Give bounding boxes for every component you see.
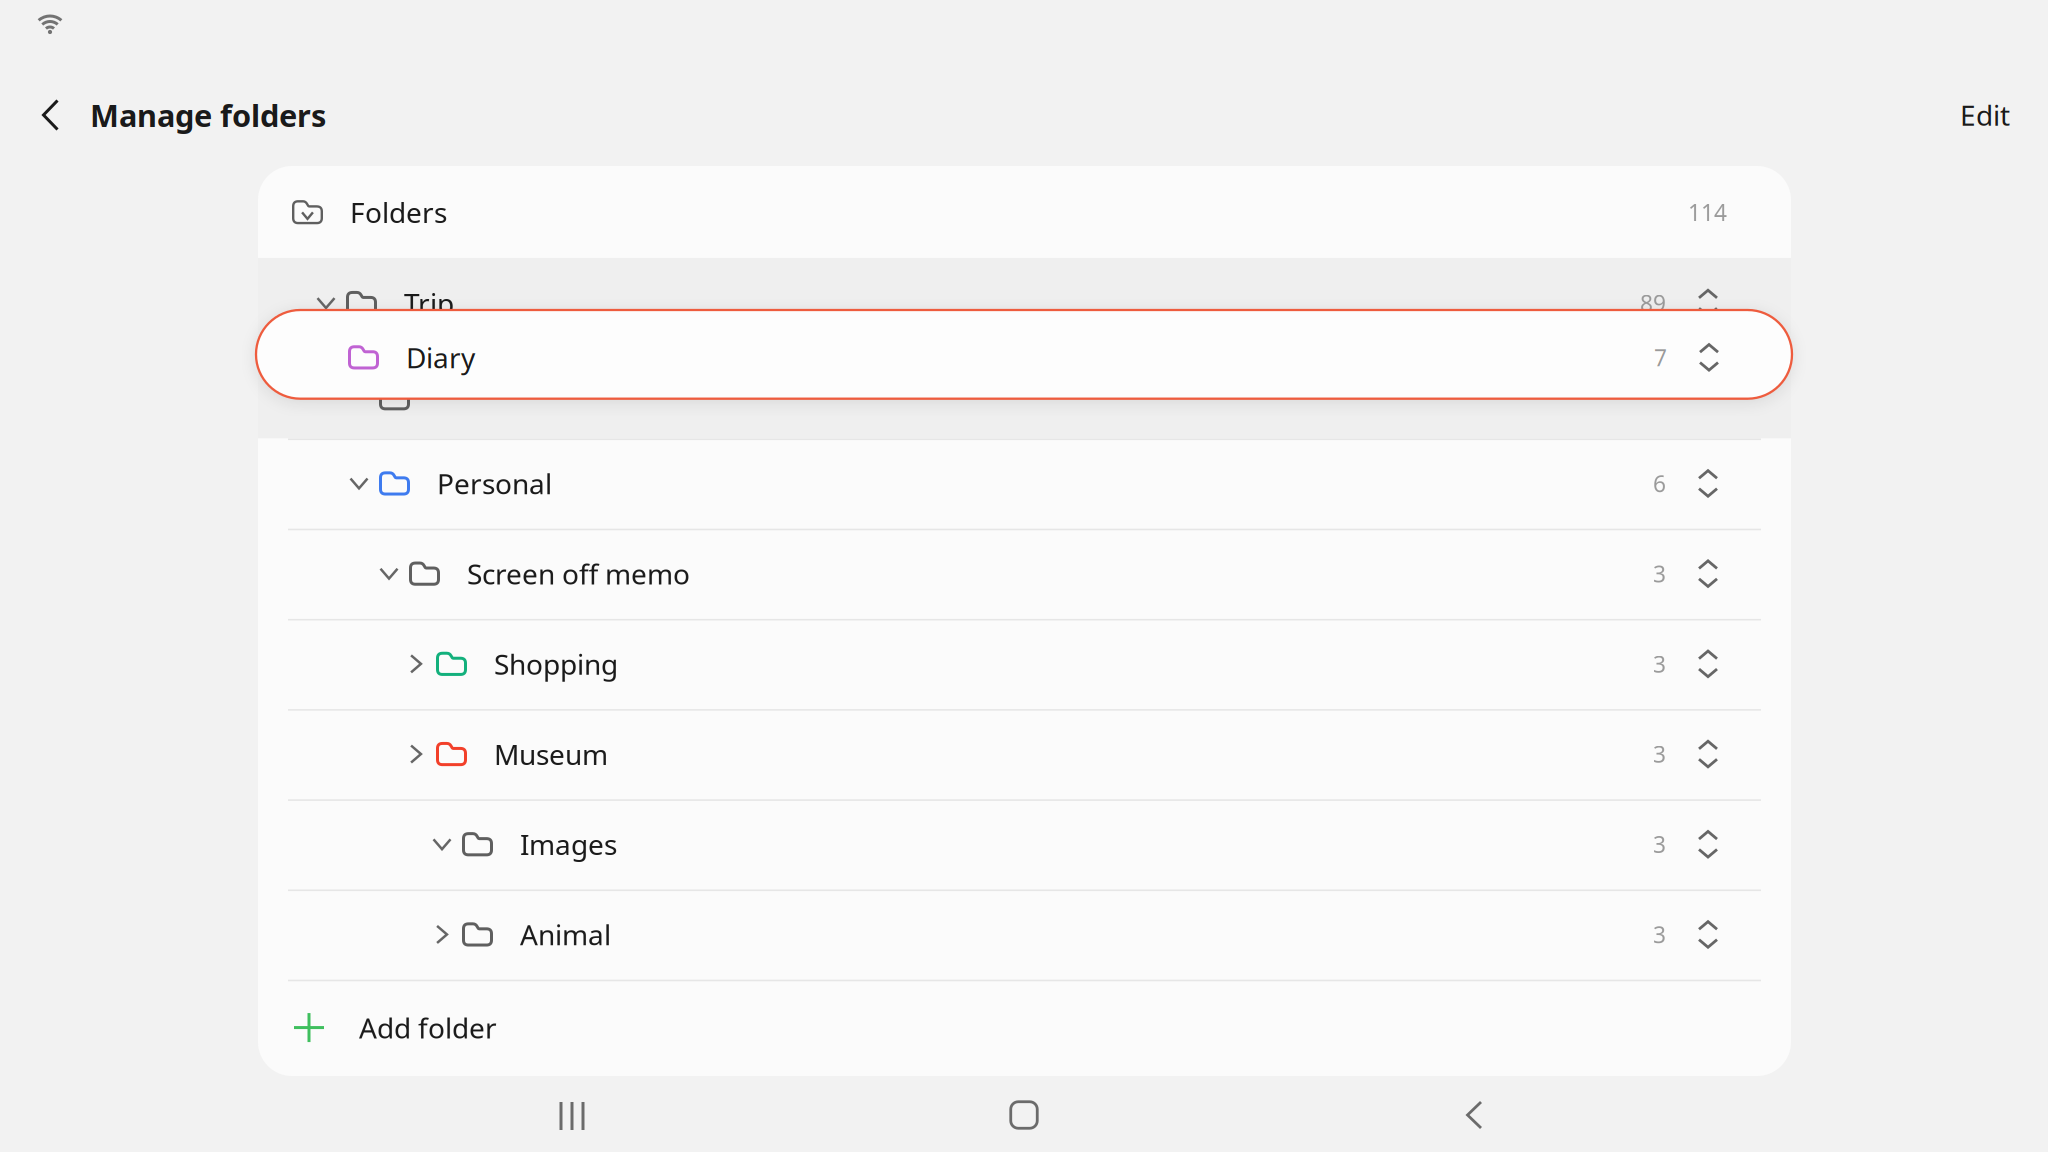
staticText: Screen off memo [467, 555, 690, 592]
staticText: Manage folders [90, 95, 326, 135]
staticText: Add folder [359, 1009, 497, 1046]
staticText: 3 [1653, 829, 1666, 859]
button[interactable]: Trip [258, 258, 1791, 348]
button[interactable]: Screen off memo [258, 528, 1791, 619]
staticText: Animal [520, 916, 611, 953]
button[interactable]: Back [19, 77, 81, 153]
staticText: 7 [1654, 342, 1667, 372]
staticText: 3 [1653, 649, 1666, 679]
button[interactable]: Museum [258, 709, 1791, 799]
staticText: 114 [1688, 197, 1727, 227]
staticText: Edit [1960, 96, 2010, 134]
staticText: 3 [1653, 559, 1666, 589]
staticText: Personal [437, 465, 552, 502]
staticText: Folders [350, 194, 447, 231]
button[interactable]: Personal [258, 438, 1791, 528]
button[interactable]: Home [992, 1089, 1056, 1141]
button[interactable]: Add folder [258, 980, 1791, 1076]
staticText: Museum [494, 735, 608, 773]
button[interactable]: Folders [258, 166, 1791, 258]
button[interactable]: Recents [547, 1090, 611, 1142]
staticText: 89 [1640, 288, 1666, 318]
staticText: 6 [1653, 468, 1666, 498]
staticText: Images [520, 826, 617, 863]
staticText: Trip [404, 284, 454, 322]
staticText: 3 [1653, 739, 1666, 769]
staticText: Shopping [494, 645, 618, 682]
button[interactable]: Shopping [258, 619, 1791, 709]
button[interactable]: Animal [258, 889, 1791, 980]
button[interactable]: Images [258, 799, 1791, 889]
button[interactable]: Diary [256, 310, 1792, 399]
button[interactable]: Back [1444, 1089, 1508, 1141]
staticText: Diary [406, 339, 475, 376]
button[interactable]: Edit [1890, 77, 2010, 153]
staticText: 3 [1653, 919, 1666, 949]
